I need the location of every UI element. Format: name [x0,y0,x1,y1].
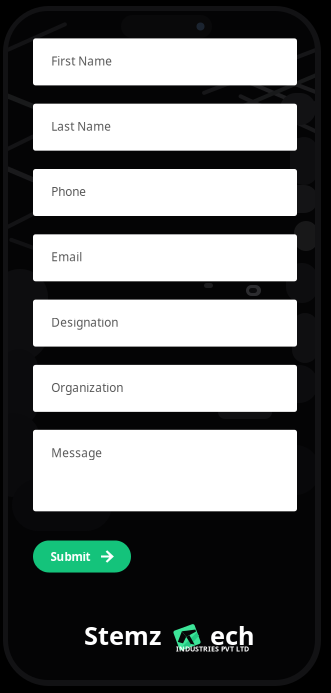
button[interactable]: Submit [33,540,131,572]
staticText: Last Name [51,118,111,134]
staticText: Email [51,249,82,265]
staticText: Stemz [84,618,161,652]
staticText: ech [210,618,254,652]
button[interactable]: Phone [33,169,297,216]
staticText: Submit [50,549,90,564]
button[interactable]: Designation [33,300,297,347]
button[interactable]: First Name [33,38,297,85]
button[interactable]: Message [33,430,297,511]
staticText: Organization [51,379,123,395]
button[interactable]: Organization [33,365,297,412]
staticText: Designation [51,314,118,330]
staticText: Message [51,445,102,461]
staticText: INDUSTRIES PVT LTD [176,644,249,654]
staticText: First Name [51,53,112,69]
button[interactable]: Last Name [33,104,297,151]
button[interactable]: Email [33,234,297,281]
staticText: Phone [51,183,86,199]
